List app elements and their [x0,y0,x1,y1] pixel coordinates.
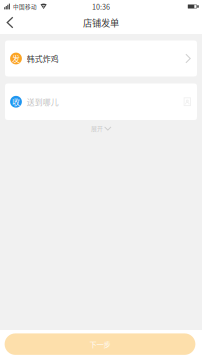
staticText: 10:36 [92,1,110,12]
staticText: 中国移动 [13,2,37,10]
staticText: 送到哪儿 [27,96,59,107]
staticText: 下一步 [89,339,110,349]
button[interactable]: 发 [5,40,197,76]
button[interactable]: 展开 [83,121,119,135]
staticText: 店铺发单 [83,16,119,29]
button[interactable]: 收 [5,83,197,120]
staticText: 发 [12,53,20,64]
button[interactable]: Back [0,12,20,33]
button[interactable]: 下一步 [5,333,195,355]
staticText: 收 [12,96,20,108]
staticText: 展开 [91,124,103,133]
staticText: 韩式炸鸡 [27,53,59,64]
